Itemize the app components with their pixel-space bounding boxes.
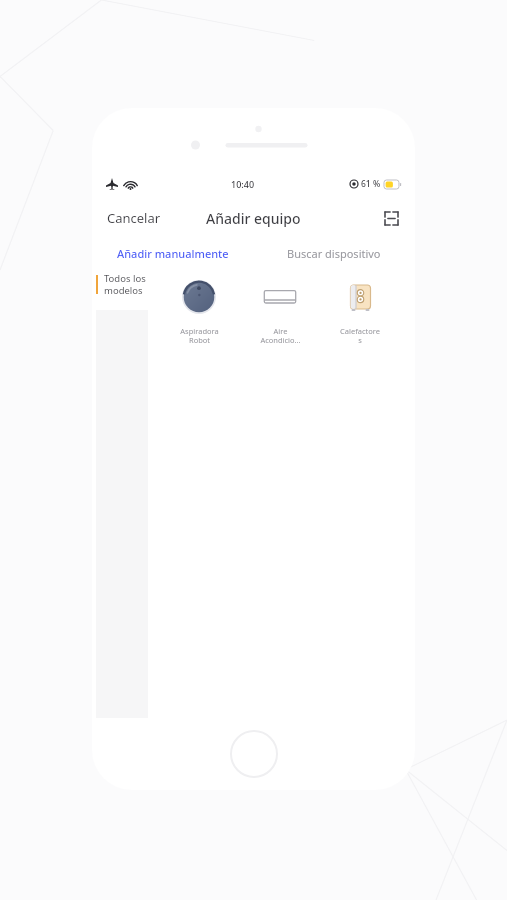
button[interactable]: Buscar dispositivo xyxy=(253,240,415,266)
button[interactable]: Escanear código xyxy=(379,206,403,230)
button[interactable]: Aire Acondicio... xyxy=(247,274,313,346)
staticText: Cancelar xyxy=(107,209,161,227)
staticText: Buscar dispositivo xyxy=(287,246,381,261)
button[interactable]: Aspiradora Robot xyxy=(166,274,232,346)
staticText: Aspiradora Robot xyxy=(180,326,219,346)
button[interactable]: Añadir manualmente xyxy=(92,240,253,266)
button[interactable]: Cancelar xyxy=(103,205,165,231)
staticText: Añadir manualmente xyxy=(117,246,229,261)
staticText: Añadir equipo xyxy=(206,209,301,228)
staticText: 61 % xyxy=(361,178,381,190)
button[interactable]: Calefactore s xyxy=(327,274,393,346)
staticText: Calefactore s xyxy=(340,326,380,346)
button[interactable]: Todos los modelos xyxy=(92,272,148,304)
staticText: Todos los modelos xyxy=(104,272,146,297)
staticText: Aire Acondicio... xyxy=(260,326,301,346)
staticText: 10:40 xyxy=(231,178,255,190)
